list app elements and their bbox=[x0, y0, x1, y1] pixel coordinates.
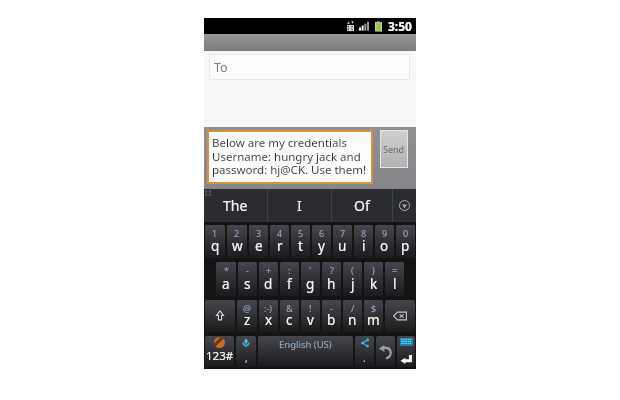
button[interactable]: Share bbox=[355, 336, 374, 367]
button[interactable]: To bbox=[209, 54, 410, 80]
staticText: ( bbox=[351, 264, 354, 276]
other: 3G data bbox=[347, 21, 354, 32]
staticText: d bbox=[264, 275, 273, 293]
staticText: p bbox=[401, 237, 410, 255]
staticText: 1 bbox=[212, 227, 218, 239]
staticText: $ bbox=[371, 302, 377, 314]
button[interactable]: + bbox=[259, 262, 278, 296]
staticText: I bbox=[297, 196, 302, 215]
staticText: To bbox=[214, 59, 228, 76]
staticText: + bbox=[266, 264, 272, 276]
staticText: g bbox=[306, 275, 315, 293]
staticText: 3:50 bbox=[388, 18, 412, 34]
staticText: - bbox=[246, 264, 249, 276]
button[interactable]: Shift bbox=[205, 300, 235, 332]
button[interactable]: English (US) bbox=[258, 336, 353, 367]
button[interactable]: 3 bbox=[249, 225, 268, 258]
button[interactable]: * bbox=[216, 262, 236, 296]
button[interactable]: 6 bbox=[312, 225, 331, 258]
button[interactable]: 4 bbox=[270, 225, 289, 258]
staticText: 5 bbox=[298, 227, 304, 239]
staticText: m bbox=[367, 311, 380, 329]
staticText: 123# bbox=[206, 348, 234, 364]
button[interactable]: Send bbox=[380, 130, 408, 168]
staticText: Of bbox=[354, 196, 370, 215]
button[interactable]: / bbox=[343, 300, 362, 332]
button[interactable]: Backspace bbox=[385, 300, 415, 332]
button[interactable]: $ bbox=[364, 300, 383, 332]
staticText: s bbox=[244, 275, 251, 293]
staticText: . bbox=[363, 351, 366, 365]
staticText: l bbox=[393, 275, 397, 293]
button[interactable]: = bbox=[385, 262, 404, 296]
staticText: k bbox=[370, 275, 378, 293]
staticText: : bbox=[288, 264, 291, 276]
button[interactable]: Enter bbox=[397, 336, 415, 367]
staticText: ? bbox=[330, 264, 334, 276]
staticText: i bbox=[362, 237, 366, 255]
staticText: 6 bbox=[319, 227, 325, 239]
button[interactable]: 5 bbox=[291, 225, 310, 258]
button[interactable]: - bbox=[322, 300, 341, 332]
staticText: ) bbox=[372, 264, 375, 276]
staticText: e bbox=[255, 237, 263, 255]
staticText: The bbox=[223, 196, 248, 215]
staticText: r bbox=[277, 237, 283, 255]
staticText: f bbox=[287, 275, 292, 293]
staticText: a bbox=[222, 275, 230, 293]
button[interactable]: - bbox=[238, 262, 257, 296]
staticText: / bbox=[351, 302, 355, 314]
other: Signal bbox=[359, 21, 369, 32]
staticText: c bbox=[286, 311, 293, 329]
staticText: 4 bbox=[277, 227, 283, 239]
button[interactable]: Symbols bbox=[205, 336, 234, 367]
button[interactable]: ( bbox=[343, 262, 362, 296]
button[interactable]: & bbox=[280, 300, 299, 332]
button[interactable]: 2 bbox=[227, 225, 247, 258]
button[interactable]: 0 bbox=[396, 225, 415, 258]
staticText: w bbox=[232, 237, 243, 255]
button[interactable]: Of bbox=[332, 189, 392, 222]
staticText: ' bbox=[309, 264, 312, 276]
button[interactable]: : bbox=[280, 262, 299, 296]
staticText: h bbox=[327, 275, 336, 293]
button[interactable]: I bbox=[268, 189, 331, 222]
staticText: 9 bbox=[382, 227, 388, 239]
staticText: @ bbox=[243, 302, 252, 314]
staticText: 8 bbox=[361, 227, 367, 239]
button[interactable]: ' bbox=[301, 262, 320, 296]
staticText: - bbox=[330, 302, 333, 314]
staticText: ! bbox=[309, 302, 312, 314]
button[interactable]: Undo bbox=[376, 336, 395, 367]
button[interactable]: ) bbox=[364, 262, 383, 296]
button[interactable]: ? bbox=[322, 262, 341, 296]
button[interactable]: 8 bbox=[354, 225, 373, 258]
staticText: Below are my credentials Username: hungr… bbox=[212, 135, 367, 177]
staticText: j bbox=[351, 275, 355, 293]
staticText: 0 bbox=[403, 227, 409, 239]
staticText: n bbox=[348, 311, 357, 329]
staticText: u bbox=[338, 237, 347, 255]
button[interactable]: Voice input bbox=[236, 336, 256, 367]
staticText: 3 bbox=[256, 227, 262, 239]
staticText: x bbox=[265, 311, 273, 329]
button[interactable]: ! bbox=[301, 300, 320, 332]
button[interactable]: 9 bbox=[375, 225, 394, 258]
button[interactable]: 1 bbox=[205, 225, 225, 258]
other: Battery bbox=[375, 21, 382, 32]
staticText: 2 bbox=[234, 227, 240, 239]
staticText: z bbox=[244, 311, 251, 329]
button[interactable]: 7 bbox=[333, 225, 352, 258]
button[interactable]: The bbox=[204, 189, 267, 222]
button[interactable]: Below are my credentials Username: hungr… bbox=[209, 132, 371, 182]
button[interactable]: More suggestions bbox=[393, 189, 416, 222]
staticText: , bbox=[245, 351, 248, 365]
staticText: = bbox=[392, 264, 398, 276]
button[interactable]: @ bbox=[237, 300, 257, 332]
staticText: q bbox=[211, 237, 220, 255]
staticText: 7 bbox=[340, 227, 346, 239]
button[interactable]: :-) bbox=[259, 300, 278, 332]
staticText: * bbox=[224, 264, 229, 276]
staticText: & bbox=[286, 302, 293, 314]
staticText: y bbox=[318, 237, 325, 255]
